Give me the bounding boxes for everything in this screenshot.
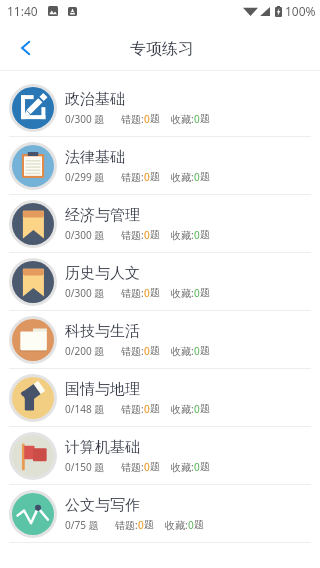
staticText: 题 xyxy=(200,460,210,473)
staticText: 0 xyxy=(194,112,200,126)
staticText: 历史与人文 xyxy=(65,264,140,283)
staticText: 题 xyxy=(144,518,154,531)
button[interactable]: 历史与人文 xyxy=(0,253,320,311)
staticText: 0/300 题 xyxy=(65,228,105,242)
staticText: 0/300 题 xyxy=(65,286,105,300)
staticText: 0 xyxy=(144,112,150,126)
staticText: 0 xyxy=(188,518,194,532)
button[interactable]: Back xyxy=(0,24,48,70)
staticText: 0 xyxy=(194,228,200,242)
staticText: 题 xyxy=(200,402,210,415)
staticText: 错题: xyxy=(121,228,144,242)
button[interactable]: 经济与管理 xyxy=(0,195,320,253)
staticText: 0/148 题 xyxy=(65,402,105,416)
staticText: 科技与生活 xyxy=(65,322,140,341)
staticText: 国情与地理 xyxy=(65,380,140,399)
button[interactable]: 公文与写作 xyxy=(0,485,320,543)
staticText: 0/300 题 xyxy=(65,112,105,126)
button[interactable]: 计算机基础 xyxy=(0,427,320,485)
staticText: 题 xyxy=(150,344,160,357)
staticText: 0/75 题 xyxy=(65,518,99,532)
staticText: 政治基础 xyxy=(65,90,125,109)
staticText: 0 xyxy=(194,344,200,358)
staticText: 法律基础 xyxy=(65,148,125,167)
staticText: 0 xyxy=(144,170,150,184)
staticText: 公文与写作 xyxy=(65,496,140,515)
staticText: 错题: xyxy=(121,460,144,474)
staticText: 0/299 题 xyxy=(65,170,105,184)
staticText: 错题: xyxy=(115,518,138,532)
staticText: 专项练习 xyxy=(130,39,194,59)
staticText: 0 xyxy=(194,402,200,416)
staticText: 收藏: xyxy=(171,170,194,184)
staticText: 错题: xyxy=(121,112,144,126)
staticText: 0 xyxy=(144,460,150,474)
staticText: 经济与管理 xyxy=(65,206,140,225)
staticText: 收藏: xyxy=(165,518,188,532)
staticText: 题 xyxy=(200,344,210,357)
staticText: 题 xyxy=(150,170,160,183)
staticText: 题 xyxy=(200,228,210,241)
staticText: 0 xyxy=(144,286,150,300)
button[interactable]: 政治基础 xyxy=(0,79,320,137)
staticText: 错题: xyxy=(121,344,144,358)
staticText: 收藏: xyxy=(171,460,194,474)
staticText: 0 xyxy=(194,286,200,300)
staticText: 题 xyxy=(200,286,210,299)
staticText: 收藏: xyxy=(171,112,194,126)
staticText: 0/150 题 xyxy=(65,460,105,474)
staticText: 错题: xyxy=(121,286,144,300)
staticText: 计算机基础 xyxy=(65,438,140,457)
staticText: 题 xyxy=(150,286,160,299)
staticText: 0 xyxy=(144,402,150,416)
staticText: 错题: xyxy=(121,402,144,416)
button[interactable]: 国情与地理 xyxy=(0,369,320,427)
staticText: 0 xyxy=(144,344,150,358)
staticText: 题 xyxy=(150,228,160,241)
button[interactable]: 科技与生活 xyxy=(0,311,320,369)
staticText: 收藏: xyxy=(171,402,194,416)
staticText: 11:40 xyxy=(7,3,38,19)
staticText: 收藏: xyxy=(171,344,194,358)
staticText: 错题: xyxy=(121,170,144,184)
staticText: 题 xyxy=(150,402,160,415)
staticText: 题 xyxy=(194,518,204,531)
staticText: 收藏: xyxy=(171,228,194,242)
staticText: 0 xyxy=(194,170,200,184)
staticText: 0 xyxy=(194,460,200,474)
staticText: 题 xyxy=(200,170,210,183)
staticText: 题 xyxy=(200,112,210,125)
staticText: 收藏: xyxy=(171,286,194,300)
staticText: 0 xyxy=(144,228,150,242)
staticText: 100% xyxy=(285,3,316,19)
staticText: 题 xyxy=(150,112,160,125)
staticText: 0/200 题 xyxy=(65,344,105,358)
button[interactable]: 法律基础 xyxy=(0,137,320,195)
staticText: 0 xyxy=(138,518,144,532)
staticText: 题 xyxy=(150,460,160,473)
